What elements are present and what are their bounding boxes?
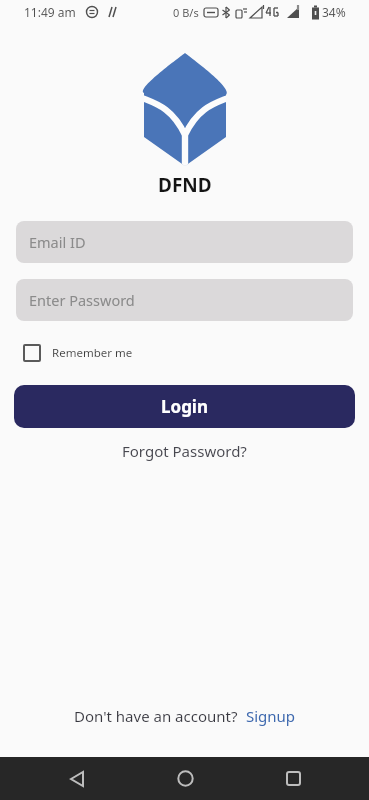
staticText: Login <box>161 395 209 418</box>
button[interactable] <box>131 757 239 800</box>
button[interactable]: Forgot Password? <box>122 441 247 461</box>
staticText: Email ID <box>29 232 86 252</box>
staticText: Enter Password <box>29 290 135 310</box>
button[interactable]: Signup <box>246 706 296 726</box>
staticText: 11:49 am <box>24 4 76 20</box>
button[interactable]: Enter Password <box>16 279 353 321</box>
staticText: Forgot Password? <box>122 441 247 461</box>
staticText: Signup <box>246 706 296 726</box>
staticText: 0 B/s <box>173 5 199 20</box>
button[interactable] <box>239 757 347 800</box>
button[interactable]: Email ID <box>16 221 353 263</box>
button[interactable]: Login <box>14 385 355 428</box>
staticText: DFND <box>158 172 212 198</box>
button[interactable]: Remember me <box>23 344 369 362</box>
staticText: 34% <box>322 4 346 20</box>
button[interactable] <box>22 757 131 800</box>
staticText: Remember me <box>52 345 133 361</box>
staticText: Don't have an account? <box>74 706 238 726</box>
